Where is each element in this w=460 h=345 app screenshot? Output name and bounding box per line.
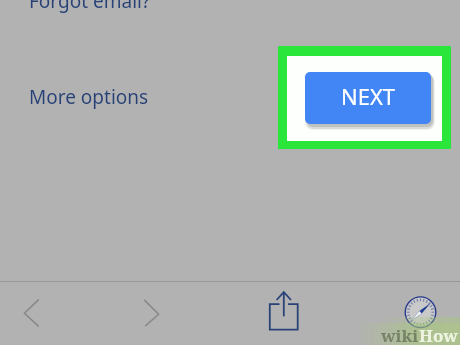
button[interactable]: Forgot email? (21, 0, 159, 18)
staticText: Forgot email? (29, 0, 151, 14)
button[interactable]: NEXT (305, 72, 431, 124)
staticText: wiki (381, 324, 419, 345)
staticText: How (419, 324, 458, 345)
staticText: More options (29, 84, 149, 110)
staticText: NEXT (341, 81, 396, 111)
button[interactable]: Forward (125, 289, 177, 337)
button[interactable]: Safari (398, 290, 443, 335)
button[interactable]: More options (21, 80, 157, 114)
button[interactable]: Share (260, 284, 308, 339)
button[interactable]: Back (4, 289, 56, 337)
